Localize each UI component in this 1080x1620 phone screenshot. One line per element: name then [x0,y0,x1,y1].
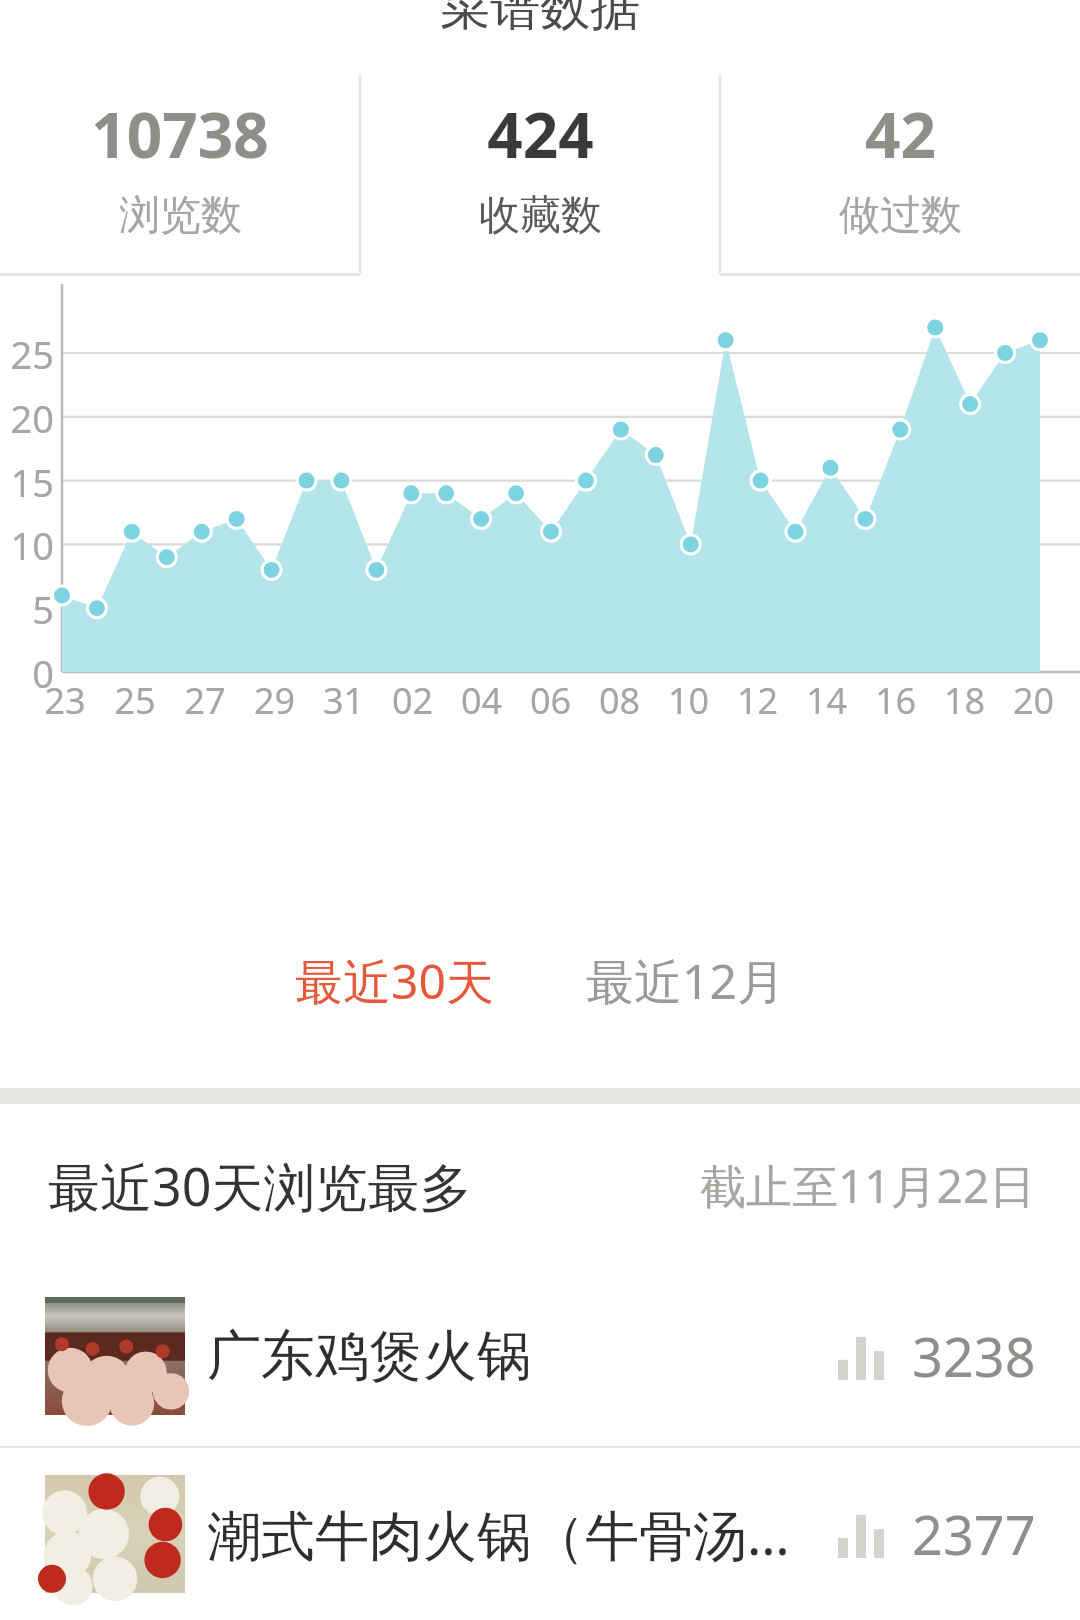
staticText: 菜谱数据 [440,0,640,34]
staticText: 18日 [930,676,999,725]
staticText: 14日 [792,676,861,725]
staticText: 20日 [999,676,1068,725]
staticText: 10日 [654,676,723,725]
staticText: 04日 [447,676,516,725]
staticText: 浏览数 [119,190,242,242]
staticText: 截止至11月22日 [700,1154,1036,1217]
staticText: 最近12月 [586,948,785,1014]
staticText: 02日 [378,676,447,725]
staticText: 最近30天 [295,948,494,1014]
staticText: 5 [10,583,54,635]
staticText: 424 [487,92,594,176]
staticText: 23日 [30,676,100,725]
button[interactable]: 潮式牛肉火锅（牛骨汤… [0,1448,1080,1620]
staticText: 42 [865,92,936,176]
staticText: 16日 [861,676,930,725]
staticText: 2377 [912,1497,1036,1571]
staticText: 最近30天浏览最多 [48,1150,472,1221]
staticText: 15 [10,456,54,508]
staticText: 12日 [723,676,792,725]
staticText: 20 [10,392,54,444]
staticText: 31日 [309,676,378,725]
button[interactable]: 42 [720,58,1080,276]
staticText: 27日 [170,676,240,725]
staticText: 25 [10,328,54,380]
button[interactable]: 最近30天 [279,936,510,1026]
staticText: 0 [10,647,54,699]
staticText: 做过数 [839,190,962,242]
staticText: 广东鸡煲火锅 [207,1322,838,1390]
staticText: 29日 [240,676,309,725]
staticText: 收藏数 [479,190,602,242]
staticText: 3238 [912,1319,1036,1393]
button[interactable]: 424 [360,58,720,276]
staticText: 08日 [585,676,654,725]
button[interactable]: 广东鸡煲火锅 [0,1266,1080,1446]
button[interactable]: 10738 [0,58,360,276]
staticText: 25日 [100,676,170,725]
staticText: 10 [10,519,54,571]
staticText: 潮式牛肉火锅（牛骨汤… [207,1497,838,1571]
staticText: 06日 [516,676,585,725]
button[interactable]: 最近12月 [570,936,801,1026]
staticText: 10738 [91,92,269,176]
